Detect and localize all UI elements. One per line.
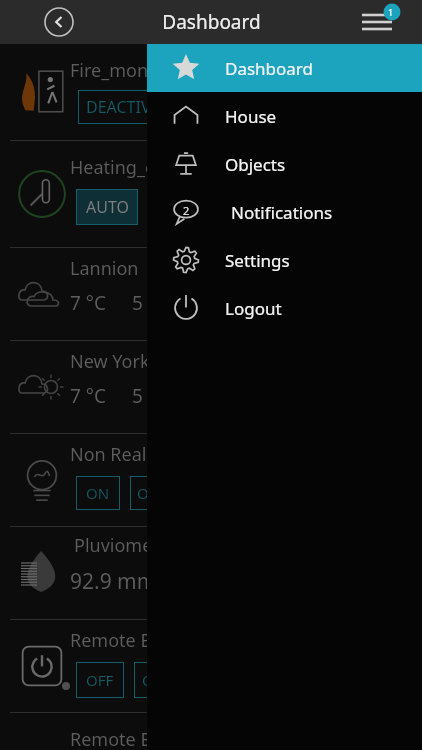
staticText: Pluviomet	[74, 533, 159, 558]
staticText: Objects	[225, 153, 286, 176]
staticText: 5	[132, 383, 143, 409]
staticText: Non Real	[70, 442, 147, 467]
staticText: AUTO	[86, 196, 129, 218]
staticText: OFF	[86, 670, 114, 690]
button[interactable]: O	[134, 662, 182, 698]
staticText: O	[142, 670, 154, 690]
staticText: 5	[132, 290, 143, 316]
button[interactable]: House	[147, 92, 422, 140]
staticText: Fire_mon	[70, 58, 149, 83]
button[interactable]: OFF	[76, 662, 124, 698]
button[interactable]: Logout	[147, 284, 422, 332]
button[interactable]: Dashboard	[147, 44, 422, 92]
button[interactable]: Settings	[147, 236, 422, 284]
button[interactable]: ON	[76, 476, 120, 510]
staticText: Heating_c	[70, 155, 154, 180]
staticText: DEACTIV	[86, 96, 151, 118]
staticText: Dashboard	[225, 57, 314, 80]
staticText: 7 °C	[70, 383, 106, 409]
staticText: Lannion	[70, 256, 139, 281]
staticText: New York	[70, 349, 150, 374]
staticText: Notifications	[231, 201, 333, 224]
staticText: ON	[86, 483, 110, 503]
staticText: O	[137, 483, 149, 503]
staticText: Dashboard	[162, 9, 261, 35]
staticText: Settings	[225, 249, 290, 272]
button[interactable]: Objects	[147, 140, 422, 188]
staticText: 7 °C	[70, 290, 106, 316]
staticText: 1	[388, 6, 394, 18]
button[interactable]: AUTO	[76, 189, 138, 225]
button[interactable]: Back	[44, 7, 74, 37]
staticText: Remote B	[70, 727, 153, 750]
staticText: 92.9 mm	[70, 567, 157, 596]
button[interactable]: 2	[147, 188, 422, 236]
staticText: 2	[183, 203, 190, 218]
button[interactable]: O	[130, 476, 174, 510]
staticText: House	[225, 105, 277, 128]
staticText: Logout	[225, 297, 282, 320]
button[interactable]: DEACTIV	[78, 90, 170, 124]
button[interactable]: Menu	[358, 2, 398, 42]
staticText: Remote B	[70, 628, 153, 653]
